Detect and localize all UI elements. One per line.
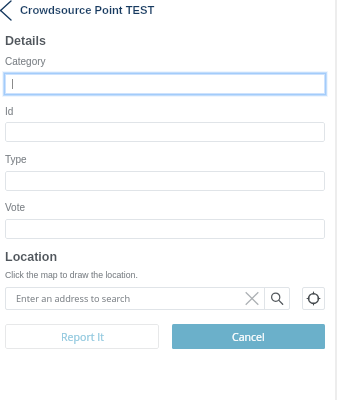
button[interactable]: Use my location bbox=[302, 287, 325, 310]
staticText: Vote bbox=[5, 202, 26, 213]
button[interactable] bbox=[5, 219, 325, 239]
button[interactable]: Search bbox=[265, 287, 289, 310]
staticText: Crowdsource Point TEST bbox=[20, 4, 155, 17]
staticText: Enter an address to search bbox=[16, 292, 239, 305]
staticText: Id bbox=[5, 106, 14, 117]
button[interactable] bbox=[6, 75, 324, 93]
staticText: Type bbox=[5, 154, 27, 165]
staticText: Report It bbox=[61, 330, 104, 344]
staticText: Cancel bbox=[232, 330, 265, 344]
staticText: Category bbox=[5, 56, 46, 67]
staticText: Click the map to draw the location. bbox=[5, 270, 138, 280]
button[interactable]: Report It bbox=[5, 324, 159, 349]
button[interactable]: Back bbox=[0, 1, 11, 20]
staticText: Details bbox=[5, 34, 46, 48]
staticText: Location bbox=[5, 250, 58, 264]
button[interactable]: Clear bbox=[239, 287, 264, 310]
button[interactable] bbox=[5, 122, 325, 142]
button[interactable]: Cancel bbox=[172, 324, 325, 349]
button[interactable] bbox=[5, 171, 325, 191]
